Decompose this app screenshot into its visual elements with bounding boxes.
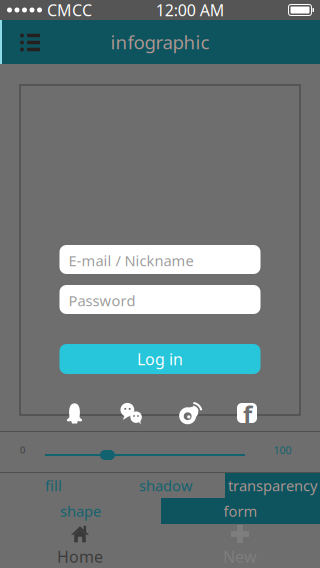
button[interactable]: form bbox=[161, 498, 320, 524]
staticText: transparency bbox=[228, 476, 317, 495]
staticText: 12:00 AM bbox=[156, 0, 225, 21]
button[interactable]: Sign in with WeChat bbox=[120, 401, 143, 424]
staticText: Password bbox=[68, 291, 135, 310]
button[interactable]: New bbox=[160, 524, 320, 568]
staticText: shadow bbox=[139, 476, 193, 495]
staticText: f bbox=[243, 398, 252, 430]
button[interactable]: Sign in with QQ bbox=[64, 402, 85, 423]
staticText: Log in bbox=[137, 348, 183, 370]
button[interactable]: Log in bbox=[59, 344, 260, 374]
staticText: form bbox=[223, 501, 257, 521]
staticText: New bbox=[223, 546, 257, 567]
button[interactable]: fill bbox=[0, 473, 107, 498]
button[interactable]: transparency bbox=[225, 473, 320, 498]
button[interactable]: shape bbox=[0, 498, 161, 524]
button[interactable]: shadow bbox=[107, 473, 225, 498]
staticText: CMCC bbox=[47, 0, 92, 21]
staticText: E-mail / Nickname bbox=[68, 251, 193, 270]
staticText: Home bbox=[57, 546, 103, 567]
button[interactable]: Home bbox=[0, 524, 160, 568]
button[interactable]: Menu bbox=[0, 20, 52, 64]
staticText: fill bbox=[45, 476, 62, 495]
button[interactable]: Sign in with Weibo bbox=[178, 401, 201, 424]
staticText: shape bbox=[60, 501, 101, 521]
staticText: infographic bbox=[110, 30, 209, 54]
staticText: 100 bbox=[273, 443, 291, 457]
button[interactable]: Sign in with Facebook bbox=[237, 403, 257, 423]
staticText: 0 bbox=[20, 444, 25, 456]
